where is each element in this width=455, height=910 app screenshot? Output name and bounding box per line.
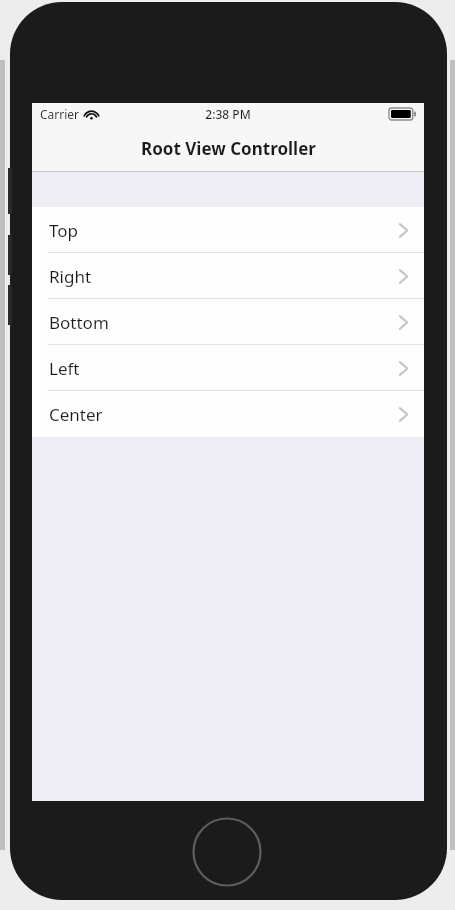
button[interactable]: Center (32, 391, 424, 437)
staticText: Bottom (49, 311, 109, 334)
button[interactable]: Home (192, 817, 262, 887)
staticText: Center (49, 403, 103, 426)
staticText: Carrier (40, 106, 80, 122)
staticText: Top (49, 219, 79, 242)
button[interactable]: Bottom (32, 299, 424, 345)
staticText: 2:38 PM (205, 106, 251, 122)
staticText: Right (49, 265, 92, 288)
button[interactable]: Right (32, 253, 424, 299)
button[interactable]: Left (32, 345, 424, 391)
button[interactable]: Top (32, 207, 424, 253)
staticText: Left (49, 357, 80, 380)
staticText: Root View Controller (141, 137, 316, 160)
